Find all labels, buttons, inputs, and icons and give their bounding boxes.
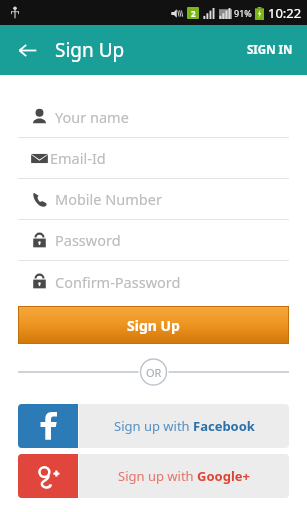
- staticText: Mobile Number: [55, 189, 162, 209]
- button[interactable]: Sign Up: [19, 307, 288, 343]
- staticText: Confirm-Password: [55, 272, 181, 292]
- button[interactable]: Email-Id: [18, 138, 289, 178]
- button[interactable]: Sign up with: [18, 454, 289, 498]
- staticText: Sign up with: [114, 417, 193, 435]
- staticText: Password: [55, 230, 121, 250]
- staticText: Sign Up: [55, 37, 125, 63]
- button[interactable]: Your name: [18, 96, 289, 137]
- button[interactable]: Mobile Number: [18, 179, 289, 219]
- staticText: Your name: [55, 107, 129, 127]
- staticText: SIGN IN: [247, 42, 293, 58]
- button[interactable]: Back: [8, 31, 46, 69]
- staticText: Sign up with: [118, 467, 197, 485]
- button[interactable]: Password: [18, 220, 289, 260]
- button[interactable]: Sign up with: [18, 404, 289, 448]
- staticText: Sign Up: [127, 316, 180, 335]
- staticText: Email-Id: [50, 148, 106, 168]
- staticText: Facebook: [193, 417, 255, 435]
- staticText: Google+: [197, 467, 250, 485]
- staticText: 2: [191, 8, 196, 19]
- button[interactable]: SIGN IN: [233, 32, 307, 68]
- staticText: 10:22: [268, 4, 302, 22]
- button[interactable]: Confirm-Password: [18, 261, 289, 302]
- staticText: OR: [146, 365, 162, 380]
- staticText: 91%: [234, 7, 252, 19]
